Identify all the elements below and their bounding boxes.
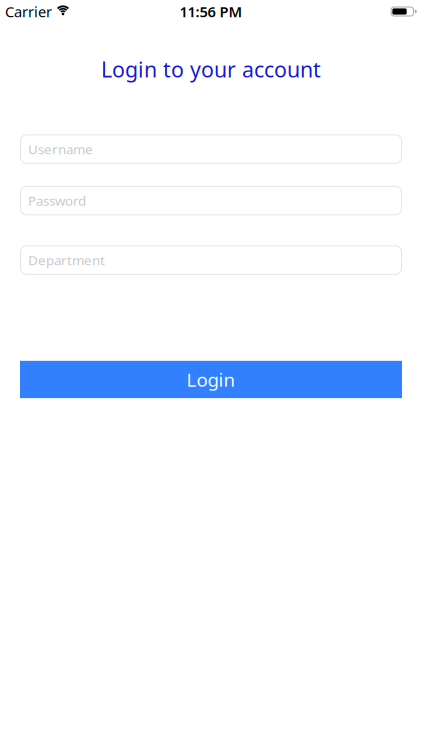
staticText: Department <box>28 251 105 269</box>
staticText: Login to your account <box>101 55 321 83</box>
textField[interactable]: Password <box>20 185 402 216</box>
textField[interactable]: Department <box>20 245 402 275</box>
textField[interactable]: Username <box>20 134 402 164</box>
staticText: Login <box>186 367 235 392</box>
staticText: Carrier <box>5 2 52 21</box>
button[interactable]: Login <box>20 361 402 398</box>
staticText: 11:56 PM <box>179 2 242 21</box>
staticText: Password <box>28 192 86 209</box>
staticText: Username <box>28 140 93 158</box>
staticText: Department <box>20 245 150 275</box>
staticText: Password <box>20 185 124 216</box>
staticText: Username <box>20 134 131 164</box>
